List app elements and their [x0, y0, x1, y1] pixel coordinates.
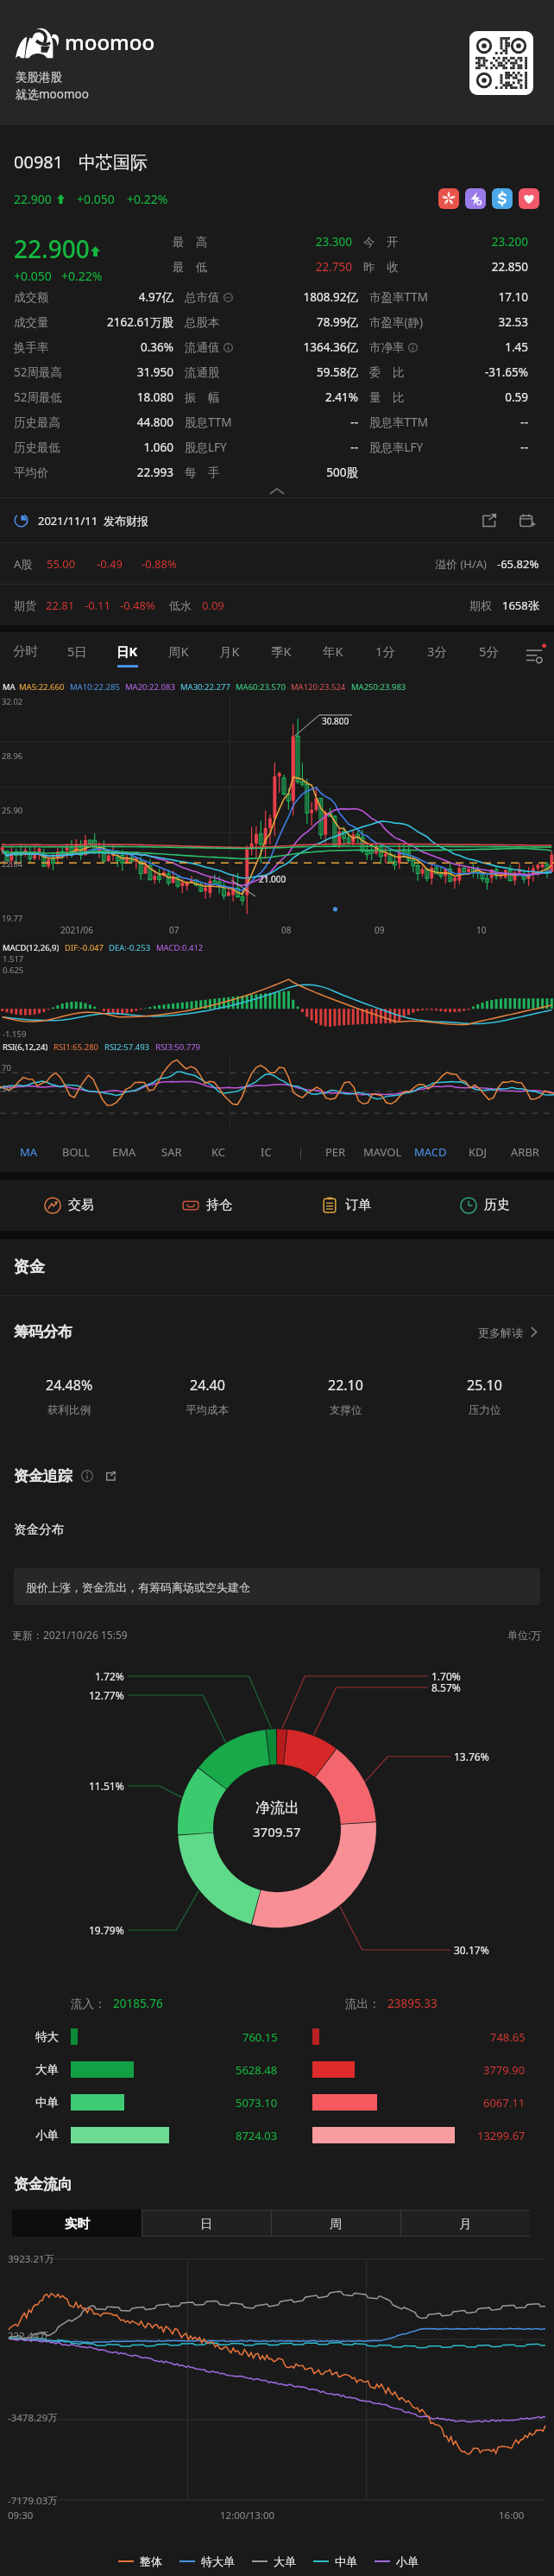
button[interactable]: Chart settings [514, 632, 554, 678]
button[interactable]: MA [5, 1131, 53, 1172]
staticText: ARBR [511, 1144, 539, 1160]
button[interactable]: 周 [271, 2210, 400, 2237]
button[interactable]: 实时 [12, 2210, 142, 2237]
button[interactable]: EMA [100, 1131, 148, 1172]
staticText: 0.59 [505, 389, 528, 405]
button[interactable]: BOLL [53, 1131, 100, 1172]
staticText: 今 开 [363, 234, 399, 250]
staticText: 0.36% [140, 339, 173, 355]
staticText: 52周最低 [14, 389, 62, 405]
button[interactable]: 期货 [0, 585, 554, 625]
staticText: 55.00 [47, 556, 76, 572]
staticText: 1364.36亿 [303, 339, 358, 355]
button[interactable]: Share funds [104, 1470, 117, 1483]
button[interactable]: 5分 [463, 632, 514, 678]
button[interactable]: | [290, 1131, 312, 1172]
staticText: 21.000 [259, 873, 286, 885]
staticText: 3779.90 [483, 2062, 526, 2078]
staticText: 就选moomoo [16, 86, 89, 102]
button[interactable]: QR code [469, 31, 533, 95]
button[interactable]: 1分 [359, 632, 411, 678]
staticText: 22.750 [315, 259, 352, 275]
button[interactable]: 月 [400, 2210, 530, 2237]
staticText: 20185.76 [113, 1996, 163, 2011]
button[interactable]: Add to calendar [518, 511, 537, 530]
button[interactable]: Collapse [0, 484, 554, 497]
button[interactable]: 持仓 [138, 1180, 276, 1231]
staticText: 股息率TTM [369, 415, 429, 430]
staticText: 2.41% [324, 389, 358, 405]
staticText: 23.200 [491, 234, 528, 250]
button[interactable]: PER [312, 1131, 359, 1172]
button[interactable]: 订单 [276, 1180, 415, 1231]
staticText: 5日 [67, 642, 87, 660]
staticText: -65.82% [497, 556, 539, 572]
button[interactable]: 筹码分布 [0, 1296, 554, 1368]
staticText: 股息LFY [185, 440, 227, 455]
staticText: 78.99亿 [316, 314, 358, 330]
staticText: 市净率 [369, 340, 405, 355]
staticText: -- [350, 440, 358, 455]
staticText: 净流出 [255, 1799, 299, 1817]
button[interactable]: MACD [406, 1131, 454, 1172]
button[interactable]: 5日 [51, 632, 102, 678]
staticText: 实时 [65, 2216, 90, 2231]
staticText: 美股港股 [16, 70, 62, 85]
staticText: A股 [14, 556, 33, 572]
staticText: 6067.11 [483, 2095, 526, 2111]
button[interactable]: A股 [0, 543, 554, 584]
button[interactable]: 3分 [411, 632, 463, 678]
staticText: 25.90 [2, 805, 23, 816]
staticText: 流入： [71, 1997, 106, 2011]
button[interactable]: 日 [142, 2210, 271, 2237]
button[interactable]: MAVOL [359, 1131, 406, 1172]
button[interactable]: 分时 [0, 632, 51, 678]
staticText: 3923.21万 [8, 2252, 55, 2266]
button[interactable]: ARBR [501, 1131, 549, 1172]
button[interactable]: 季K [255, 632, 307, 678]
staticText: 周K [168, 642, 189, 660]
staticText: KC [211, 1144, 226, 1160]
staticText: 1.060 [143, 440, 173, 455]
button[interactable]: 历史 [415, 1180, 554, 1231]
staticText: 成交额 [14, 290, 49, 305]
button[interactable]: SAR [148, 1131, 195, 1172]
button[interactable]: 年K [307, 632, 359, 678]
staticText: 总股本 [185, 315, 220, 330]
staticText: 每 手 [185, 465, 220, 480]
button[interactable]: Share [480, 511, 499, 530]
staticText: 12.77% [89, 1688, 124, 1702]
button[interactable]: Info [81, 1470, 93, 1482]
button[interactable]: Favourite [519, 188, 539, 209]
button[interactable]: 周K [153, 632, 204, 678]
staticText: 3709.57 [253, 1823, 301, 1840]
button[interactable]: 2021/11/11 发布财报 [0, 498, 554, 542]
staticText: MA60:23.570 [236, 681, 286, 693]
button[interactable]: Fast trade [465, 188, 486, 209]
staticText: +0.22% [127, 191, 168, 207]
button[interactable]: Short sell [492, 188, 513, 209]
staticText: 整体 [140, 2554, 162, 2568]
staticText: 1.72% [95, 1669, 124, 1683]
staticText: -0.88% [142, 556, 177, 572]
staticText: 5628.48 [236, 2062, 278, 2078]
staticText: 分时 [13, 643, 38, 659]
staticText: 24.48% [46, 1376, 93, 1395]
staticText: 资金分布 [14, 1522, 64, 1537]
button[interactable]: 交易 [0, 1180, 138, 1231]
staticText: 52周最高 [14, 364, 62, 380]
staticText: 流通股 [185, 365, 220, 380]
staticText: MA5:22.660 [19, 681, 65, 693]
staticText: MA10:22.285 [70, 681, 120, 693]
staticText: -0.48% [120, 598, 155, 613]
staticText: +0.22% [61, 268, 103, 284]
staticText: 特大 [35, 2029, 59, 2044]
button[interactable]: KDJ [454, 1131, 501, 1172]
button[interactable]: KC [195, 1131, 242, 1172]
button[interactable]: 日K [102, 632, 153, 678]
button[interactable]: 月K [204, 632, 255, 678]
staticText: 32.53 [498, 314, 528, 330]
button[interactable]: Hong Kong stock [438, 188, 459, 209]
staticText: 历史最高 [14, 415, 60, 430]
button[interactable]: IC [242, 1131, 290, 1172]
